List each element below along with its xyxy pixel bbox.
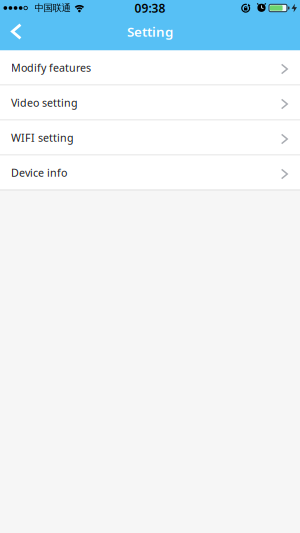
button[interactable]: Video setting (0, 85, 300, 120)
staticText: 中国联通 (34, 2, 70, 14)
button[interactable]: Back (0, 16, 36, 50)
staticText: Video setting (11, 95, 78, 110)
staticText: Setting (127, 23, 173, 40)
staticText: WIFI setting (11, 130, 74, 145)
button[interactable]: Device info (0, 155, 300, 190)
staticText: Device info (11, 165, 67, 180)
staticText: Modify features (11, 60, 91, 75)
button[interactable]: WIFI setting (0, 120, 300, 155)
button[interactable]: Modify features (0, 50, 300, 85)
staticText: 09:38 (134, 0, 165, 16)
